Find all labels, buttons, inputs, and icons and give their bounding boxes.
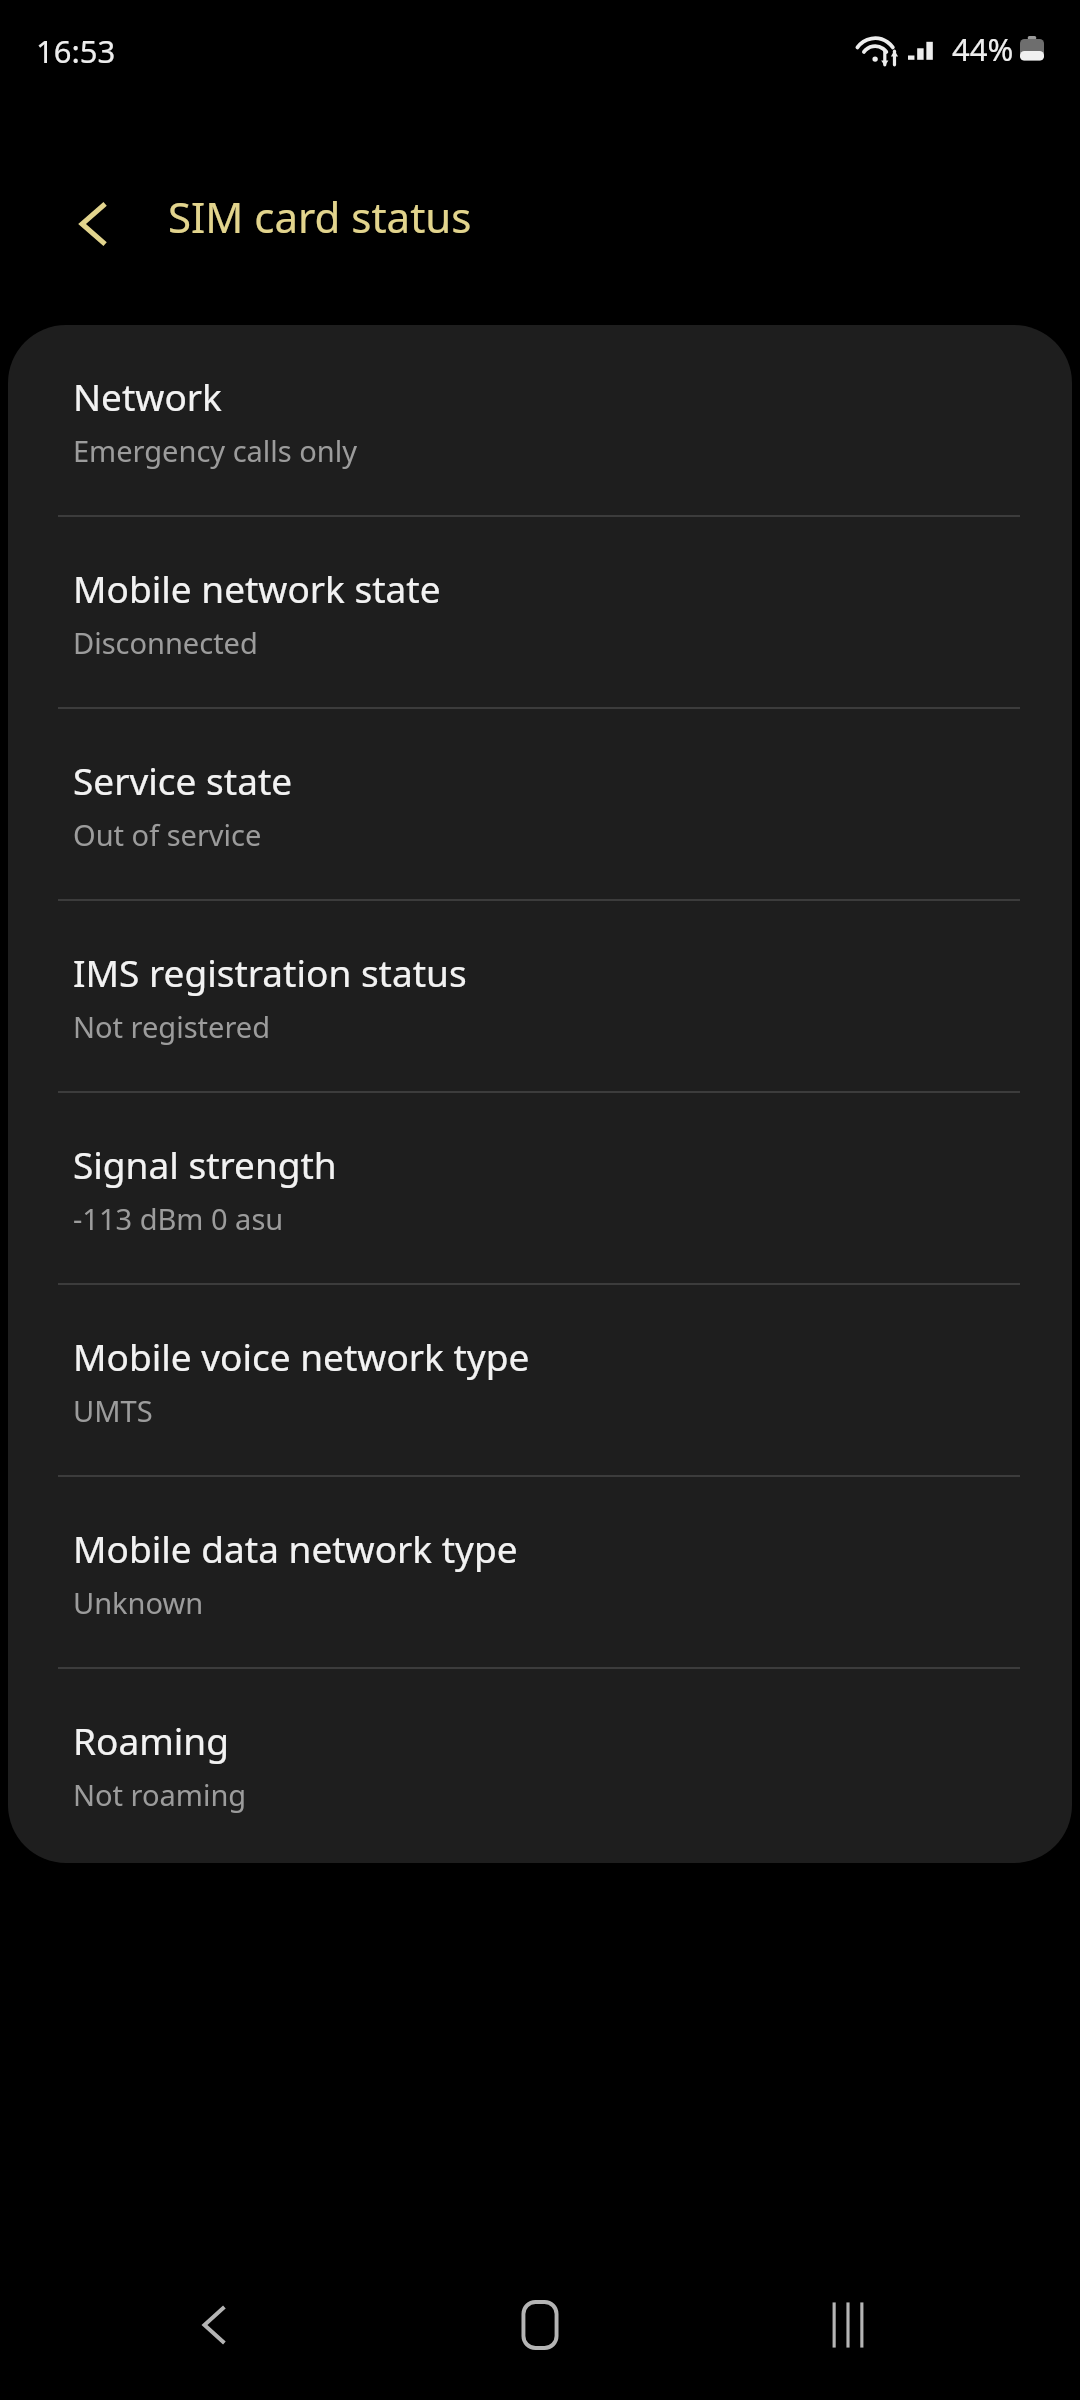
staticText: Service state (73, 755, 293, 805)
staticText: 44% (952, 28, 1014, 70)
staticText: Disconnected (73, 623, 258, 662)
staticText: Network (73, 371, 222, 421)
staticText: Mobile data network type (73, 1523, 518, 1573)
button[interactable]: Home (480, 2265, 600, 2385)
staticText: Mobile network state (73, 563, 441, 613)
button[interactable]: Network (8, 325, 1072, 515)
button[interactable]: Recent apps (788, 2265, 908, 2385)
staticText: Not roaming (73, 1775, 247, 1814)
staticText: UMTS (73, 1391, 153, 1430)
button[interactable]: Mobile network state (8, 517, 1072, 707)
button[interactable]: IMS registration status (8, 901, 1072, 1091)
staticText: Out of service (73, 815, 262, 854)
staticText: Unknown (73, 1583, 204, 1622)
button[interactable]: Roaming (8, 1669, 1072, 1859)
button[interactable]: Back (155, 2265, 275, 2385)
button[interactable]: Mobile data network type (8, 1477, 1072, 1667)
button[interactable]: Service state (8, 709, 1072, 899)
staticText: SIM card status (168, 188, 472, 245)
staticText: -113 dBm 0 asu (73, 1199, 284, 1238)
staticText: Roaming (73, 1715, 229, 1765)
staticText: IMS registration status (73, 947, 467, 997)
button[interactable]: Signal strength (8, 1093, 1072, 1283)
staticText: 16:53 (36, 30, 116, 72)
button[interactable]: Mobile voice network type (8, 1285, 1072, 1475)
staticText: Emergency calls only (73, 431, 357, 470)
staticText: Mobile voice network type (73, 1331, 530, 1381)
button[interactable]: Navigate up (42, 172, 146, 276)
staticText: Signal strength (73, 1139, 337, 1189)
staticText: Not registered (73, 1007, 270, 1046)
